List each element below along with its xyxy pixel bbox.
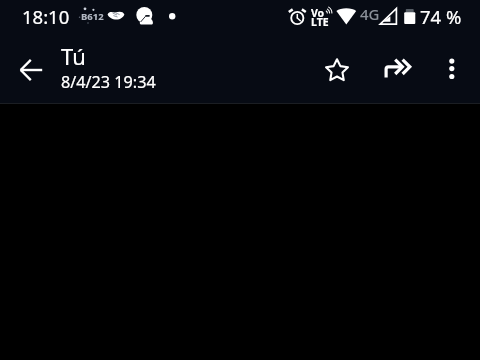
staticText: 4G	[360, 4, 380, 24]
staticText: LTE	[311, 15, 329, 29]
staticText: 74 %	[420, 4, 462, 29]
button[interactable]: Tú	[57, 37, 267, 97]
staticText: Vo	[311, 6, 325, 20]
staticText: 8/4/23 19:34	[61, 71, 156, 93]
button[interactable]: Star	[314, 47, 360, 93]
staticText: B612	[81, 10, 104, 23]
button[interactable]: Back	[8, 46, 55, 93]
staticText: 18:10	[22, 4, 70, 29]
button[interactable]: More options	[429, 46, 475, 92]
staticText: Tú	[61, 41, 86, 71]
button[interactable]: Forward	[374, 46, 420, 92]
